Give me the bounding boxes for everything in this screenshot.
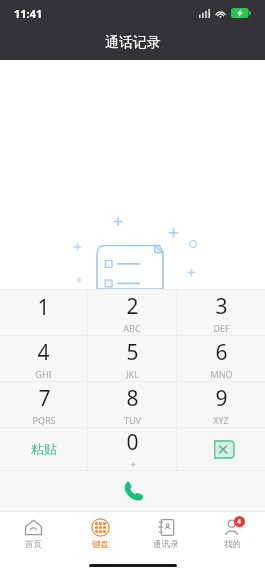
- staticText: 8: [126, 384, 139, 413]
- button[interactable]: 6: [177, 336, 265, 381]
- staticText: 首页: [25, 539, 42, 550]
- button[interactable]: Call: [111, 474, 155, 508]
- button[interactable]: 1: [0, 290, 87, 335]
- button[interactable]: 7: [0, 382, 87, 427]
- button[interactable]: 0: [88, 428, 176, 470]
- staticText: 4: [237, 517, 242, 527]
- staticText: +: [130, 458, 136, 470]
- staticText: ABC: [123, 322, 141, 334]
- staticText: 5: [126, 338, 139, 367]
- button[interactable]: 2: [88, 290, 176, 335]
- staticText: JKL: [126, 368, 139, 380]
- staticText: 通话记录: [105, 34, 161, 52]
- staticText: 1: [37, 293, 50, 322]
- button[interactable]: 9: [177, 382, 265, 427]
- staticText: 4: [37, 338, 50, 367]
- button[interactable]: Backspace: [177, 428, 265, 470]
- staticText: 6: [215, 338, 228, 367]
- button[interactable]: 4: [0, 336, 87, 381]
- button[interactable]: 4: [199, 512, 265, 556]
- button[interactable]: 首页: [0, 512, 67, 556]
- staticText: 3: [215, 292, 228, 321]
- button[interactable]: 粘贴: [0, 428, 87, 470]
- staticText: DEF: [213, 322, 230, 334]
- staticText: 键盘: [92, 539, 109, 550]
- staticText: XYZ: [213, 414, 229, 426]
- staticText: 7: [38, 384, 51, 413]
- staticText: 9: [215, 384, 228, 413]
- button[interactable]: 8: [88, 382, 176, 427]
- staticText: 11:41: [14, 6, 43, 21]
- staticText: 通讯录: [153, 539, 179, 550]
- staticText: PQRS: [32, 414, 56, 426]
- button[interactable]: 通讯录: [133, 512, 199, 556]
- staticText: 2: [126, 292, 139, 321]
- staticText: 粘贴: [31, 441, 57, 457]
- staticText: 我的: [224, 539, 241, 550]
- button[interactable]: 5: [88, 336, 176, 381]
- staticText: 0: [126, 428, 139, 457]
- staticText: MNO: [210, 368, 233, 380]
- button[interactable]: 3: [177, 290, 265, 335]
- staticText: GHI: [35, 368, 52, 380]
- staticText: TUV: [124, 414, 141, 426]
- button[interactable]: 键盘: [67, 512, 133, 556]
